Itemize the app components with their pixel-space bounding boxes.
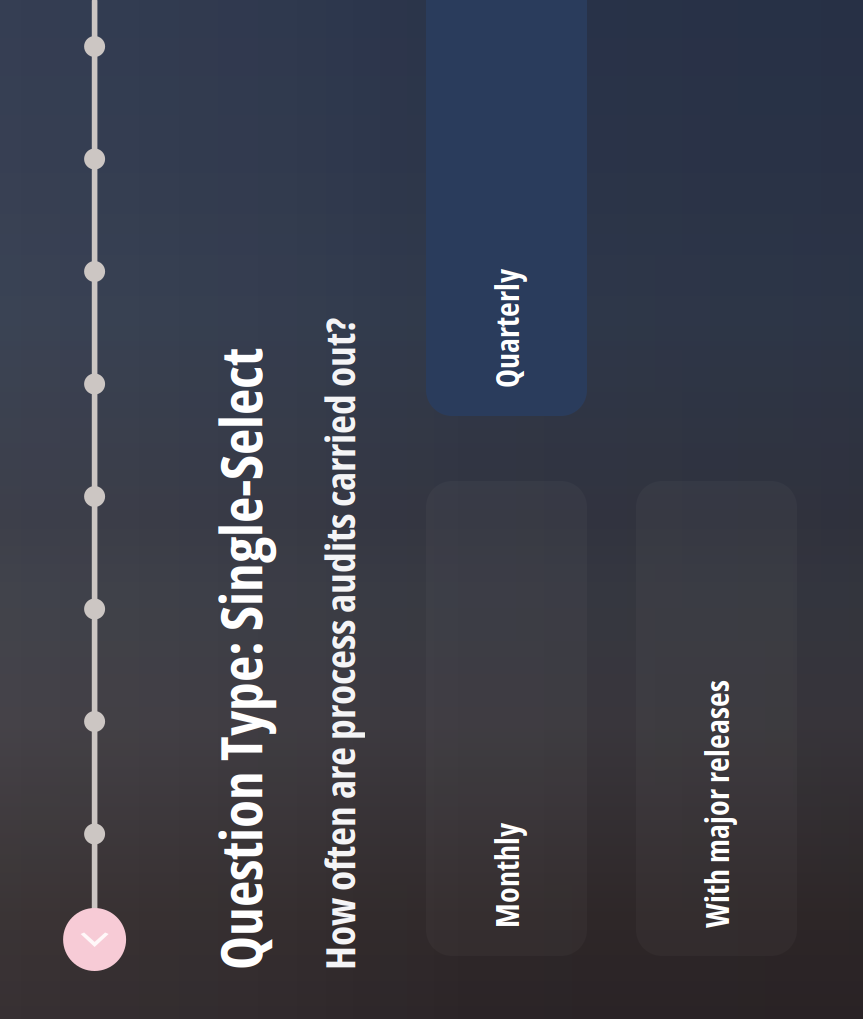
staticText: With major releases (13, 773, 261, 816)
staticText: Quarterly (553, 563, 672, 606)
staticText: How often are process audits carried out… (0, 389, 623, 445)
staticText: Question Type: Single-Select (0, 279, 593, 357)
button[interactable]: With major releases (0, 714, 460, 875)
staticText: Monthly (13, 563, 118, 606)
button[interactable]: Monthly (0, 504, 460, 665)
button[interactable]: Quarterly (525, 504, 863, 665)
